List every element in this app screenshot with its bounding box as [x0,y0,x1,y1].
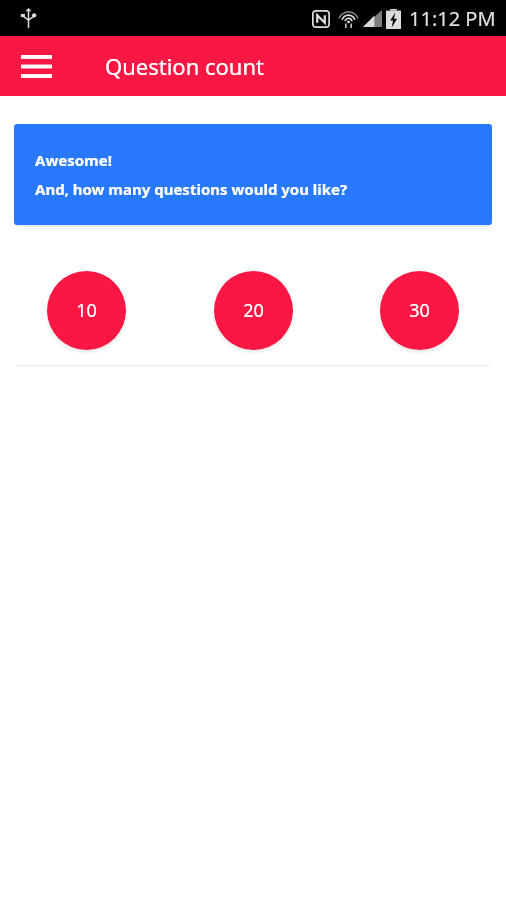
staticText: 10 [76,298,97,323]
staticText: 20 [243,298,264,323]
staticText: And, how many questions would you like? [35,179,348,199]
staticText: 30 [409,298,430,323]
staticText: Awesome! [35,150,112,170]
staticText: 11:12 PM [409,5,496,32]
button[interactable]: 30 [380,271,459,350]
button[interactable]: 20 [214,271,293,350]
button[interactable]: Awesome! [14,124,492,225]
button[interactable]: 10 [47,271,126,350]
button[interactable]: Open navigation menu [8,38,64,94]
staticText: Question count [105,51,264,81]
